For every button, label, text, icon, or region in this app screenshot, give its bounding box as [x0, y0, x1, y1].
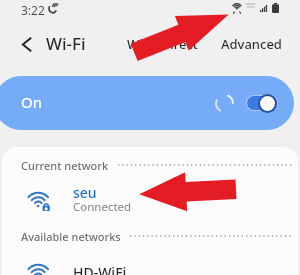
button[interactable]: Advanced	[221, 35, 282, 53]
button[interactable]: HD-WiFi	[2, 255, 298, 275]
staticText: Connected	[73, 199, 132, 214]
button[interactable]: Wi-Fi Direct	[127, 35, 198, 53]
staticText: Available networks	[21, 229, 121, 243]
button[interactable]: Wi-Fi toggle	[247, 96, 277, 110]
button[interactable]: On	[0, 76, 294, 130]
staticText: seu	[73, 183, 97, 202]
button[interactable]: Back	[13, 30, 41, 58]
button[interactable]: seu	[2, 183, 298, 217]
staticText: 3:22	[21, 2, 45, 18]
staticText: On	[21, 92, 42, 112]
staticText: HD-WiFi	[73, 263, 127, 275]
staticText: Current network	[21, 158, 109, 172]
staticText: Wi-Fi	[46, 32, 86, 55]
